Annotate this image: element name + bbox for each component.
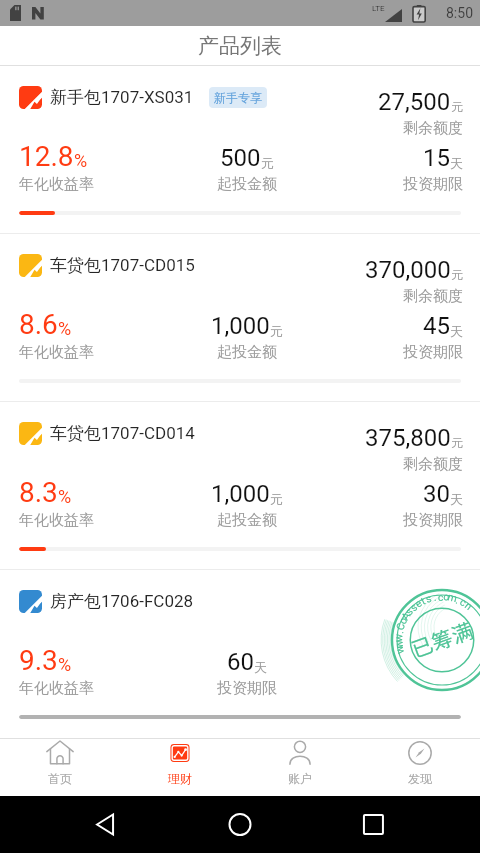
staticText: 天 [254,659,267,675]
staticText: 账户 [288,771,312,786]
button[interactable]: 发现 [360,739,480,786]
staticText: 元 [451,99,463,114]
staticText: 起投金额 [217,511,277,530]
staticText: 理财 [168,771,192,786]
staticText: 1,000 [211,480,270,506]
staticText: 8.3 [19,476,58,502]
staticText: 年化收益率 [19,343,94,362]
staticText: % [58,486,72,507]
staticText: 产品列表 [198,33,282,59]
staticText: 投资期限 [403,511,463,530]
staticText: 元 [451,267,463,282]
button[interactable]: 理财 [120,739,240,786]
staticText: 8.6 [19,308,58,334]
button[interactable]: 车贷包1707-CD015 [0,234,480,401]
staticText: 新手包1707-XS031 [50,87,194,108]
staticText: 房产包1706-FC028 [50,591,194,612]
staticText: % [74,150,88,171]
staticText: 投资期限 [403,175,463,194]
staticText: 500 [220,144,261,170]
button[interactable]: 新手包1707-XS031 [0,66,480,233]
button[interactable]: 账户 [240,739,360,786]
staticText: % [58,318,72,339]
staticText: LTE [372,4,385,13]
staticText: 12.8 [19,140,74,166]
staticText: 元 [451,435,463,450]
staticText: 首页 [48,771,72,786]
staticText: 年化收益率 [19,175,94,194]
staticText: 元 [270,323,283,339]
staticText: 年化收益率 [19,679,94,698]
staticText: 投资期限 [217,679,277,698]
staticText: 剩余额度 [403,119,463,138]
button[interactable]: 首页 [0,739,120,786]
staticText: 天 [450,491,463,507]
staticText: 天 [450,155,463,171]
staticText: 15 [423,144,450,170]
staticText: 剩余额度 [403,455,463,474]
staticText: % [58,654,72,675]
button[interactable]: 车贷包1707-CD014 [0,402,480,569]
staticText: 30 [423,480,450,506]
staticText: 天 [450,323,463,339]
staticText: 新手专享 [214,90,262,105]
staticText: 投资期限 [403,343,463,362]
staticText: 9.3 [19,644,58,670]
staticText: 370,000 [365,256,451,284]
staticText: 车贷包1707-CD015 [50,255,195,276]
staticText: 45 [423,312,450,338]
staticText: 发现 [408,771,432,786]
staticText: 375,800 [365,424,451,452]
staticText: 1,000 [211,312,270,338]
staticText: 元 [270,491,283,507]
staticText: 剩余额度 [403,287,463,306]
staticText: 车贷包1707-CD014 [50,423,195,444]
staticText: 元 [261,155,274,171]
button[interactable]: 房产包1706-FC028 [0,570,480,737]
staticText: 60 [227,648,254,674]
staticText: 27,500 [378,88,451,116]
staticText: 8:50 [446,5,473,21]
staticText: 起投金额 [217,175,277,194]
staticText: 起投金额 [217,343,277,362]
staticText: 年化收益率 [19,511,94,530]
